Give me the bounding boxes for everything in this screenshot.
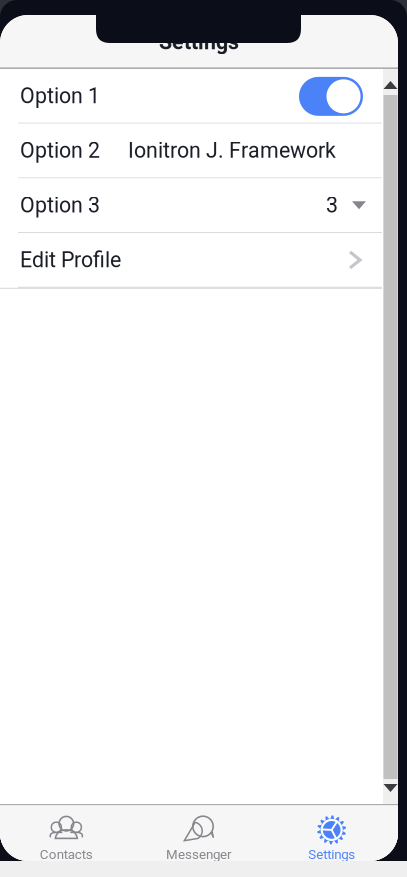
- button[interactable]: Settings: [265, 805, 398, 861]
- button[interactable]: Option 2: [0, 124, 382, 178]
- staticText: Messenger: [166, 847, 232, 862]
- button[interactable]: Edit Profile: [0, 233, 382, 288]
- staticText: Option 2: [20, 138, 100, 163]
- button[interactable]: Messenger: [133, 805, 265, 861]
- staticText: Edit Profile: [20, 247, 121, 272]
- staticText: 3: [326, 193, 338, 218]
- staticText: Settings: [308, 847, 355, 862]
- staticText: Contacts: [40, 847, 93, 862]
- button[interactable]: Contacts: [0, 805, 133, 861]
- staticText: Ionitron J. Framework: [128, 138, 336, 163]
- staticText: Option 1: [20, 83, 100, 108]
- button[interactable]: Option 1: [0, 69, 382, 124]
- button[interactable]: Option 3: [0, 178, 382, 233]
- staticText: Settings: [159, 29, 239, 54]
- staticText: Option 3: [20, 193, 100, 218]
